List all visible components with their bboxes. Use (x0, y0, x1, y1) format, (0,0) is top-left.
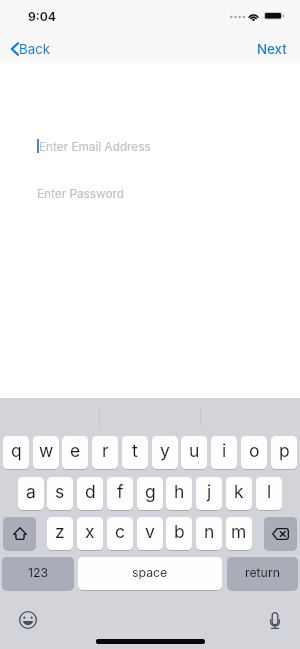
button[interactable]: k (226, 477, 252, 510)
staticText: Enter Email Address (39, 140, 151, 154)
staticText: f (117, 481, 124, 502)
button[interactable]: i (211, 436, 237, 469)
staticText: space (132, 565, 168, 580)
button[interactable]: t (122, 436, 148, 469)
staticText: z (55, 521, 65, 542)
staticText: c (115, 521, 125, 542)
button[interactable]: p (271, 436, 297, 469)
button[interactable]: f (107, 477, 133, 510)
staticText: d (85, 481, 96, 502)
button[interactable]: Next (249, 38, 295, 60)
button[interactable]: s (47, 477, 73, 510)
button[interactable]: o (241, 436, 267, 469)
staticText: b (174, 521, 185, 542)
button[interactable]: n (196, 517, 222, 550)
staticText: return (245, 565, 280, 580)
staticText: r (102, 440, 109, 461)
button[interactable]: space (78, 557, 222, 590)
button[interactable]: r (92, 436, 118, 469)
button[interactable]: y (152, 436, 178, 469)
staticText: a (26, 481, 36, 502)
staticText: o (249, 440, 260, 461)
button[interactable]: d (77, 477, 103, 510)
button[interactable]: l (256, 477, 282, 510)
button[interactable]: q (3, 436, 29, 469)
button[interactable]: Back (2, 38, 59, 60)
button[interactable]: v (137, 517, 163, 550)
button[interactable]: a (18, 477, 44, 510)
button[interactable]: m (226, 517, 252, 550)
button[interactable]: Emoji keyboard (12, 604, 44, 636)
staticText: Enter Password (37, 187, 125, 201)
button[interactable]: Enter Email Address (0, 134, 300, 160)
staticText: t (132, 440, 138, 461)
button[interactable]: w (33, 436, 59, 469)
button[interactable]: Dictation (259, 604, 291, 636)
button[interactable]: c (107, 517, 133, 550)
staticText: l (267, 481, 272, 502)
staticText: q (11, 440, 22, 461)
staticText: p (279, 440, 290, 461)
staticText: i (222, 440, 227, 461)
staticText: 123 (28, 565, 49, 580)
button[interactable]: h (166, 477, 192, 510)
button[interactable]: 123 (2, 557, 74, 590)
staticText: Next (257, 41, 287, 57)
button[interactable]: return (227, 557, 298, 590)
button[interactable]: b (166, 517, 192, 550)
staticText: n (204, 521, 215, 542)
button[interactable]: g (137, 477, 163, 510)
staticText: s (55, 481, 65, 502)
staticText: x (85, 521, 95, 542)
button[interactable]: u (181, 436, 207, 469)
button[interactable]: j (196, 477, 222, 510)
button[interactable]: e (62, 436, 88, 469)
staticText: e (70, 440, 81, 461)
staticText: k (234, 481, 244, 502)
button[interactable]: z (47, 517, 73, 550)
staticText: u (189, 440, 200, 461)
button[interactable]: Shift (3, 517, 36, 550)
staticText: v (145, 521, 155, 542)
button[interactable]: Enter Password (0, 181, 300, 207)
staticText: g (145, 481, 156, 502)
button[interactable]: x (77, 517, 103, 550)
staticText: y (160, 440, 170, 461)
staticText: h (174, 481, 185, 502)
staticText: Back (19, 41, 51, 57)
staticText: m (231, 521, 247, 542)
staticText: j (207, 481, 212, 502)
staticText: w (39, 440, 54, 461)
staticText: 9:04 (28, 9, 56, 24)
button[interactable]: Backspace (264, 517, 297, 550)
